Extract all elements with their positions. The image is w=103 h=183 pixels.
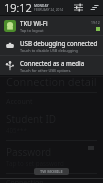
staticText: Connection detail bbox=[6, 74, 97, 89]
staticText: Connection bbox=[6, 178, 44, 183]
staticText: FEBRUARY 24, 2014 bbox=[34, 8, 64, 12]
button[interactable]: Connected as a media device bbox=[0, 56, 103, 75]
button[interactable]: Quick settings bbox=[73, 2, 84, 13]
staticText: Tap to logout bbox=[20, 28, 44, 33]
staticText: TKU Wi-Fi bbox=[20, 19, 48, 27]
button[interactable]: TKU Wi-Fi bbox=[0, 16, 103, 35]
staticText: Touch to disable USB debugging bbox=[20, 48, 78, 53]
staticText: 19:12 bbox=[4, 0, 32, 15]
staticText: Connected as a media device bbox=[20, 59, 100, 67]
staticText: Touch for other USB options. bbox=[20, 68, 72, 73]
staticText: Password bbox=[6, 145, 52, 159]
staticText: 19:12 bbox=[91, 20, 100, 25]
staticText: TW MOBILE bbox=[40, 169, 63, 174]
button[interactable]: Clear all notifications bbox=[89, 2, 100, 13]
staticText: Student ID bbox=[6, 112, 57, 126]
button[interactable]: USB debugging connected bbox=[0, 36, 103, 55]
staticText: USB debugging connected bbox=[20, 39, 98, 47]
button[interactable]: Close notification shade bbox=[34, 168, 69, 175]
staticText: MONDAY bbox=[34, 4, 49, 8]
